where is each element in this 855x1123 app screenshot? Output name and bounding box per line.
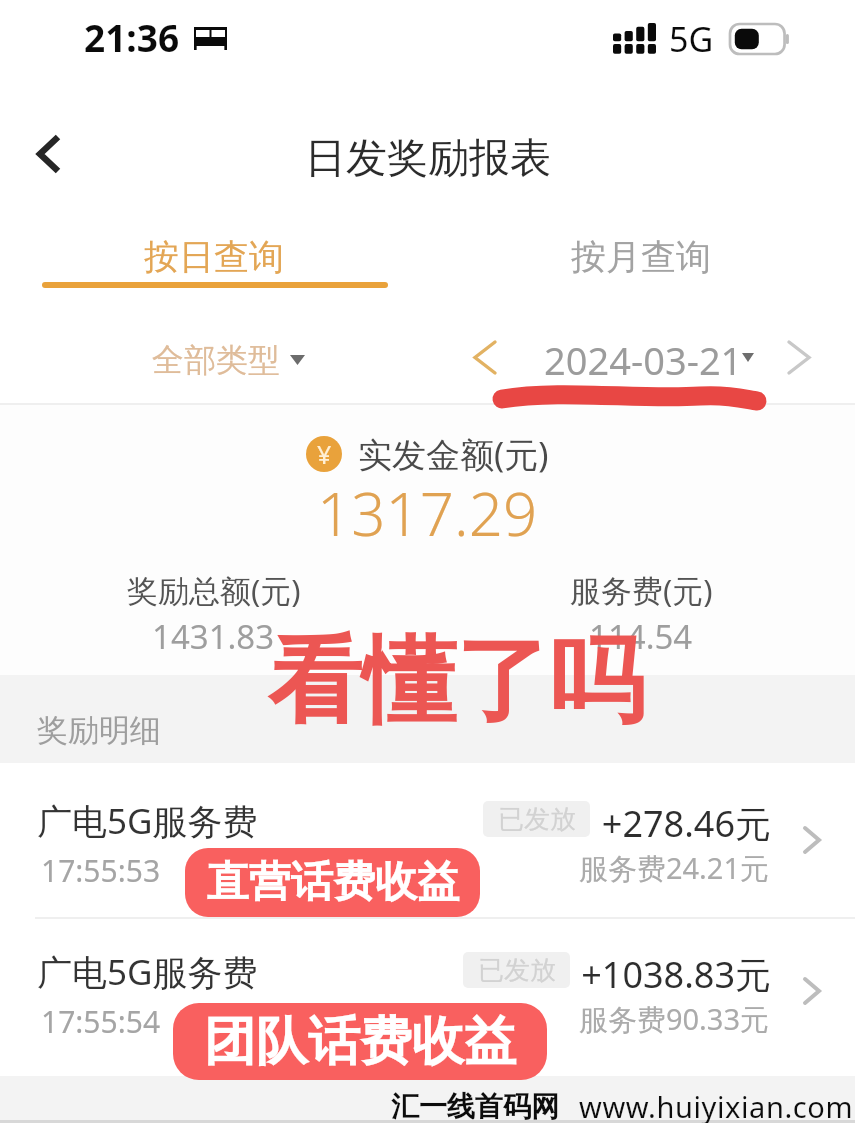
staticText: 团队话费收益 [204, 1009, 516, 1075]
staticText: +1038.83元 [0, 950, 771, 999]
staticText: 按月查询 [571, 235, 711, 279]
staticText: 广电5G服务费 [37, 948, 258, 996]
staticText: 日发奖励报表 [305, 133, 551, 185]
staticText: 按日查询 [144, 235, 284, 279]
staticText: 114.54 [589, 614, 693, 659]
staticText: 已发放 [478, 954, 556, 987]
button[interactable]: 全部类型 [152, 340, 305, 380]
button[interactable]: 广电5G服务费 [0, 915, 855, 1067]
button[interactable]: 按日查询 [0, 224, 427, 294]
staticText: 汇一线首码网 [391, 1089, 559, 1123]
button[interactable]: 按月查询 [427, 224, 855, 294]
staticText: 21:36 [84, 12, 180, 62]
staticText: 服务费24.21元 [0, 848, 769, 888]
staticText: 奖励总额(元) [127, 569, 301, 611]
staticText: 服务费(元) [570, 569, 713, 611]
staticText: 5G [669, 16, 714, 62]
staticText: 已发放 [498, 803, 576, 836]
staticText: ¥ [317, 437, 332, 471]
staticText: 1317.29 [317, 472, 538, 554]
button[interactable]: Previous day [461, 340, 509, 374]
button[interactable]: 广电5G服务费 [0, 764, 855, 916]
staticText: www.huiyixian.com [579, 1087, 854, 1123]
staticText: 1431.83 [152, 614, 275, 659]
staticText: 实发金额(元) [358, 431, 549, 477]
button[interactable]: 2024-03-21 [544, 334, 774, 378]
staticText: 全部类型 [152, 340, 280, 380]
staticText: 2024-03-21 [544, 334, 743, 378]
staticText: 奖励明细 [37, 711, 161, 750]
staticText: 17:55:53 [41, 850, 161, 891]
staticText: 17:55:54 [41, 1001, 161, 1042]
staticText: 直营话费收益 [207, 856, 459, 909]
button[interactable]: Back [19, 124, 79, 184]
staticText: 服务费90.33元 [0, 999, 769, 1039]
staticText: 广电5G服务费 [37, 797, 258, 845]
button[interactable]: Next day [775, 340, 823, 374]
staticText: 看懂了吗 [268, 622, 644, 740]
staticText: +278.46元 [0, 799, 771, 848]
